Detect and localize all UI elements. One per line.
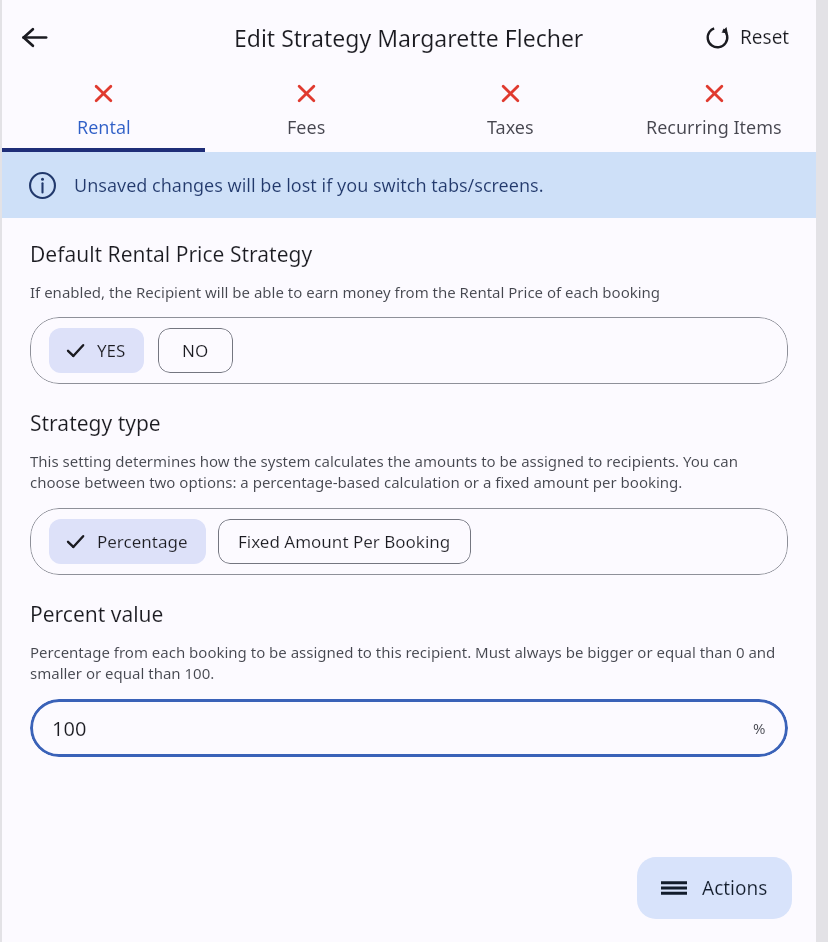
button[interactable]: Taxes: [408, 74, 612, 148]
staticText: Percentage from each booking to be assig…: [30, 642, 788, 684]
button[interactable]: Percentage: [49, 519, 206, 564]
staticText: Default Rental Price Strategy: [30, 240, 313, 269]
staticText: Unsaved changes will be lost if you swit…: [74, 173, 544, 198]
staticText: Reset: [740, 24, 790, 50]
button[interactable]: Actions: [637, 857, 792, 919]
staticText: Rental: [77, 115, 131, 140]
staticText: Actions: [702, 875, 768, 901]
staticText: %: [753, 718, 766, 738]
staticText: This setting determines how the system c…: [30, 451, 788, 493]
staticText: YES: [97, 339, 126, 362]
button[interactable]: Fees: [205, 74, 408, 148]
button[interactable]: NO: [158, 328, 233, 373]
button[interactable]: Reset: [701, 18, 794, 56]
staticText: Recurring Items: [646, 115, 782, 140]
button[interactable]: Recurring Items: [612, 74, 816, 148]
button[interactable]: YES: [49, 328, 144, 373]
staticText: If enabled, the Recipient will be able t…: [30, 282, 661, 302]
staticText: Percent value: [30, 600, 164, 629]
staticText: Edit Strategy Margarette Flecher: [234, 22, 584, 53]
button[interactable]: Back: [10, 13, 58, 61]
staticText: Strategy type: [30, 409, 161, 438]
staticText: Fees: [287, 115, 326, 140]
staticText: Taxes: [487, 115, 534, 140]
staticText: Fixed Amount Per Booking: [238, 530, 451, 553]
button[interactable]: Rental: [2, 74, 205, 148]
staticText: Percentage: [97, 530, 188, 553]
button[interactable]: Fixed Amount Per Booking: [218, 519, 471, 564]
staticText: NO: [182, 339, 209, 362]
staticText: 100: [52, 715, 87, 742]
button[interactable]: 100: [30, 699, 788, 757]
